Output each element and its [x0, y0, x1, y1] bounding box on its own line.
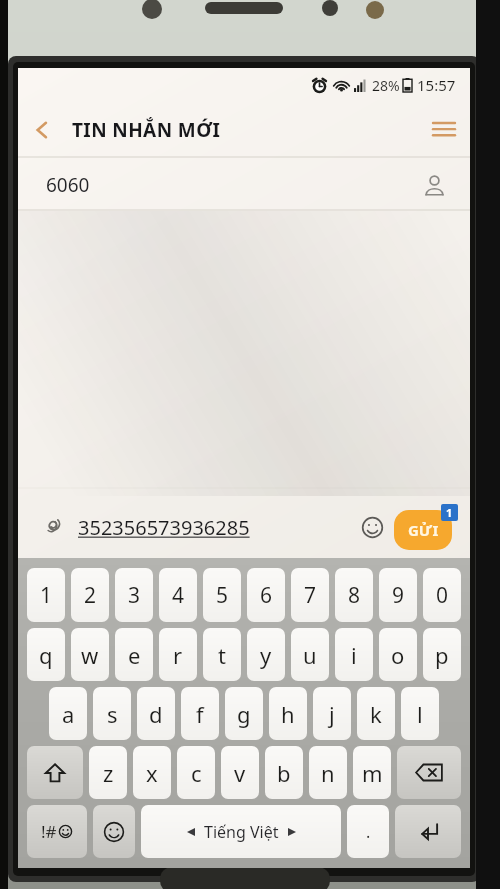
- button[interactable]: c: [177, 746, 215, 799]
- button[interactable]: Enter: [395, 805, 461, 858]
- staticText: z: [103, 758, 114, 788]
- button[interactable]: Contacts: [416, 167, 452, 203]
- staticText: p: [435, 640, 449, 670]
- button[interactable]: Emoji: [354, 509, 390, 545]
- staticText: 15:57: [417, 75, 456, 95]
- staticText: 0: [436, 581, 449, 610]
- staticText: l: [417, 699, 423, 729]
- staticText: s: [107, 699, 118, 729]
- button[interactable]: o: [379, 628, 417, 681]
- button[interactable]: 7: [291, 568, 329, 622]
- staticText: TIN NHẮN MỚI: [72, 117, 221, 143]
- staticText: 9: [392, 581, 405, 610]
- staticText: 4: [172, 581, 185, 610]
- button[interactable]: 2: [71, 568, 109, 622]
- staticText: b: [277, 758, 291, 788]
- button[interactable]: p: [423, 628, 461, 681]
- button[interactable]: w: [71, 628, 109, 681]
- staticText: j: [329, 699, 335, 729]
- button[interactable]: j: [313, 687, 351, 740]
- button[interactable]: g: [225, 687, 263, 740]
- button[interactable]: Menu: [418, 104, 470, 156]
- staticText: w: [81, 640, 99, 670]
- button[interactable]: s: [93, 687, 131, 740]
- button[interactable]: x: [133, 746, 171, 799]
- staticText: m: [362, 758, 383, 788]
- button[interactable]: 6060: [18, 158, 470, 211]
- button[interactable]: 5: [203, 568, 241, 622]
- button[interactable]: k: [357, 687, 395, 740]
- staticText: q: [39, 640, 53, 670]
- button[interactable]: t: [203, 628, 241, 681]
- staticText: u: [303, 640, 317, 670]
- button[interactable]: e: [115, 628, 153, 681]
- button[interactable]: y: [247, 628, 285, 681]
- staticText: r: [173, 640, 183, 670]
- button[interactable]: Delete: [397, 746, 461, 799]
- button[interactable]: l: [401, 687, 439, 740]
- button[interactable]: m: [353, 746, 391, 799]
- staticText: y: [260, 640, 272, 670]
- button[interactable]: a: [49, 687, 87, 740]
- button[interactable]: i: [335, 628, 373, 681]
- staticText: a: [62, 699, 75, 729]
- staticText: 1: [40, 581, 53, 610]
- button[interactable]: r: [159, 628, 197, 681]
- staticText: v: [234, 758, 246, 788]
- staticText: g: [237, 699, 251, 729]
- staticText: 28%: [372, 76, 400, 95]
- button[interactable]: b: [265, 746, 303, 799]
- button[interactable]: Attach: [36, 510, 70, 544]
- staticText: 6060: [46, 172, 90, 198]
- staticText: n: [321, 758, 335, 788]
- button[interactable]: 352356573936285: [78, 514, 250, 541]
- button[interactable]: Tiếng Việt: [141, 805, 341, 858]
- staticText: 8: [348, 581, 361, 610]
- staticText: e: [128, 640, 141, 670]
- staticText: 6: [260, 581, 273, 610]
- staticText: 3: [128, 581, 141, 610]
- button[interactable]: !#: [27, 805, 87, 858]
- staticText: 1: [446, 505, 453, 520]
- staticText: 7: [304, 581, 317, 610]
- staticText: 2: [84, 581, 97, 610]
- button[interactable]: GỬI: [394, 510, 452, 550]
- button[interactable]: q: [27, 628, 65, 681]
- button[interactable]: 6: [247, 568, 285, 622]
- button[interactable]: z: [89, 746, 127, 799]
- button[interactable]: n: [309, 746, 347, 799]
- button[interactable]: Emoji: [93, 805, 135, 858]
- button[interactable]: 9: [379, 568, 417, 622]
- button[interactable]: f: [181, 687, 219, 740]
- button[interactable]: 0: [423, 568, 461, 622]
- button[interactable]: 1: [27, 568, 65, 622]
- button[interactable]: d: [137, 687, 175, 740]
- button[interactable]: Shift: [27, 746, 83, 799]
- staticText: d: [149, 699, 163, 729]
- staticText: x: [146, 758, 158, 788]
- staticText: t: [218, 640, 226, 670]
- button[interactable]: u: [291, 628, 329, 681]
- button[interactable]: 4: [159, 568, 197, 622]
- staticText: Tiếng Việt: [204, 821, 279, 843]
- staticText: h: [281, 699, 295, 729]
- button[interactable]: 8: [335, 568, 373, 622]
- button[interactable]: .: [347, 805, 389, 858]
- button[interactable]: Back: [18, 106, 66, 154]
- staticText: GỬI: [408, 520, 439, 540]
- staticText: 5: [216, 581, 229, 610]
- staticText: !#: [41, 820, 57, 843]
- button[interactable]: h: [269, 687, 307, 740]
- staticText: i: [351, 640, 357, 670]
- staticText: .: [366, 821, 371, 843]
- staticText: k: [370, 699, 382, 729]
- button[interactable]: 3: [115, 568, 153, 622]
- button[interactable]: v: [221, 746, 259, 799]
- staticText: o: [391, 640, 405, 670]
- staticText: c: [191, 758, 202, 788]
- staticText: f: [196, 699, 204, 729]
